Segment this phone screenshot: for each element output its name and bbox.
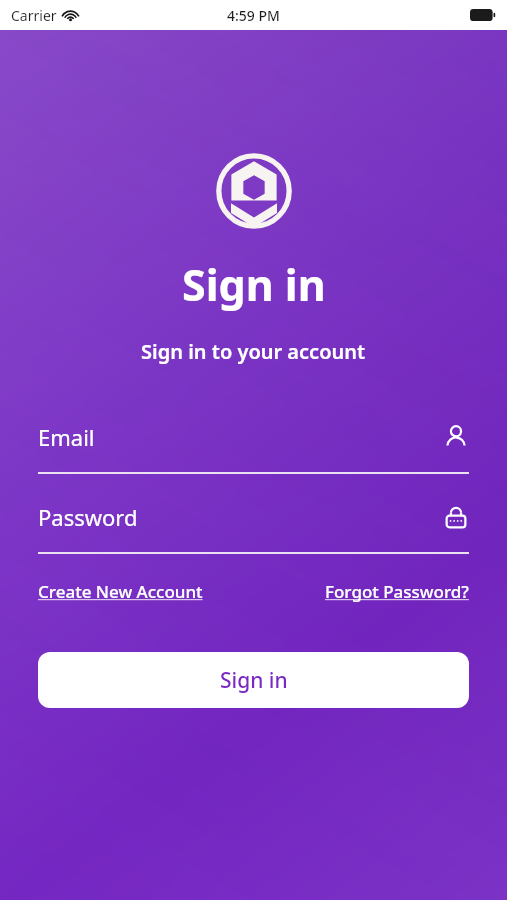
staticText: 4:59 PM bbox=[227, 6, 280, 25]
other: Password bbox=[443, 504, 469, 530]
staticText: Sign in bbox=[182, 255, 326, 314]
button[interactable]: Create New Account bbox=[38, 576, 203, 607]
staticText: Email bbox=[38, 422, 95, 452]
staticText: Sign in to your account bbox=[141, 338, 366, 365]
other: Email account bbox=[443, 424, 469, 450]
button[interactable]: Forgot Password? bbox=[325, 576, 469, 607]
staticText: Password bbox=[38, 502, 138, 532]
staticText: Sign in bbox=[220, 666, 288, 695]
button[interactable]: Password bbox=[38, 497, 469, 554]
staticText: Carrier bbox=[11, 6, 57, 25]
button[interactable]: Sign in bbox=[38, 652, 469, 708]
staticText: Create New Account bbox=[38, 580, 203, 603]
staticText: Forgot Password? bbox=[325, 580, 469, 603]
other: App logo bbox=[215, 152, 293, 230]
button[interactable]: Email bbox=[38, 417, 469, 474]
